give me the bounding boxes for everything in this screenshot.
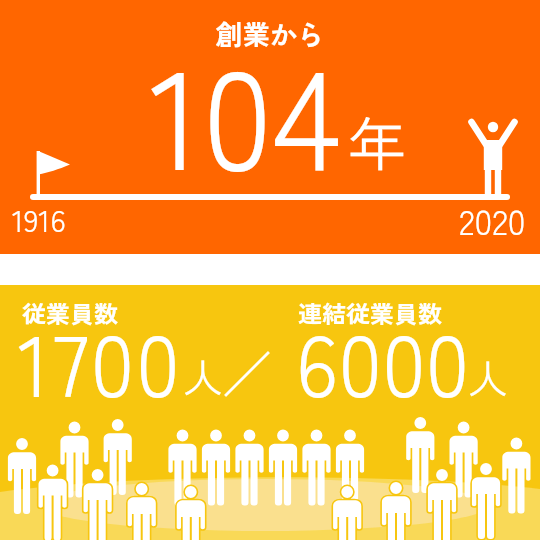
staticText: 1700 [18, 297, 182, 422]
staticText: 創業から [216, 14, 324, 53]
staticText: 人 [468, 348, 508, 406]
staticText: ／ [222, 335, 272, 407]
staticText: 6000 [296, 297, 470, 422]
staticText: 年 [348, 99, 407, 183]
staticText: 人 [183, 347, 223, 405]
staticText: 104 [150, 10, 341, 210]
button[interactable]: 従業員数 [0, 285, 540, 540]
staticText: 1916 [12, 196, 66, 241]
button[interactable]: 創業から [0, 0, 540, 254]
staticText: 2020 [459, 194, 526, 245]
staticText: 連結従業員数 [298, 295, 442, 330]
staticText: 従業員数 [22, 295, 118, 330]
